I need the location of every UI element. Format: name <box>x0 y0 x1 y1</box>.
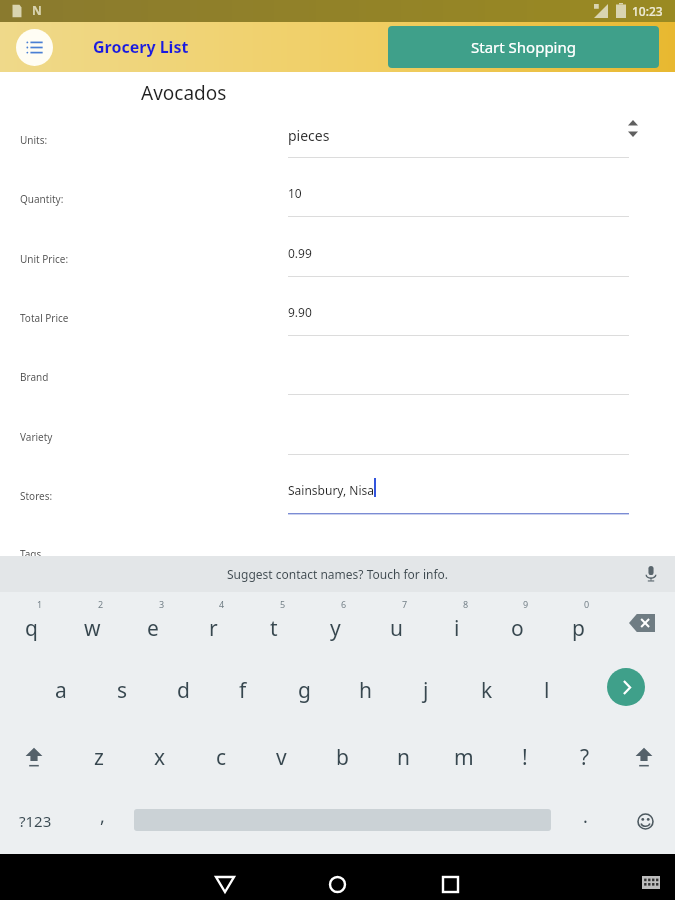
staticText: 6 <box>341 598 347 610</box>
staticText: 1 <box>37 598 43 610</box>
button[interactable]: Recent apps <box>428 862 472 900</box>
staticText: ? <box>580 743 590 772</box>
button[interactable]: t <box>244 594 304 652</box>
button[interactable]: k <box>457 661 517 719</box>
button[interactable]: pieces <box>288 121 629 159</box>
button[interactable]: x <box>130 728 190 786</box>
button[interactable]: w <box>62 594 122 652</box>
staticText: 0 <box>584 598 590 610</box>
staticText: e <box>147 614 159 643</box>
staticText: v <box>276 743 287 772</box>
staticText: Units: <box>20 133 48 147</box>
staticText: 10 <box>288 185 302 201</box>
staticText: 8 <box>463 598 469 610</box>
staticText: t <box>270 614 278 643</box>
staticText: Stores: <box>20 489 53 503</box>
button[interactable]: r <box>183 594 243 652</box>
button[interactable]: Shift right <box>618 728 670 786</box>
button[interactable]: o <box>487 594 547 652</box>
button[interactable]: m <box>434 728 494 786</box>
button[interactable]: ! <box>495 728 555 786</box>
staticText: pieces <box>288 126 330 145</box>
staticText: Start Shopping <box>471 37 576 57</box>
staticText: Total Price <box>20 311 69 325</box>
staticText: 5 <box>280 598 286 610</box>
staticText: Unit Price: <box>20 252 69 266</box>
staticText: q <box>25 614 38 643</box>
staticText: r <box>209 614 218 643</box>
staticText: 3 <box>159 598 165 610</box>
staticText: 9.90 <box>288 304 312 320</box>
staticText: 9 <box>523 598 529 610</box>
button[interactable]: s <box>92 661 152 719</box>
button[interactable]: Backspace <box>613 594 671 652</box>
staticText: c <box>216 743 227 772</box>
button[interactable] <box>288 358 629 396</box>
staticText: n <box>397 743 410 772</box>
button[interactable]: Shift <box>8 728 60 786</box>
button[interactable]: , <box>76 795 128 847</box>
button[interactable]: v <box>251 728 311 786</box>
button[interactable]: u <box>366 594 426 652</box>
button[interactable]: . <box>562 795 608 847</box>
button[interactable]: i <box>427 594 487 652</box>
button[interactable]: 0.99 <box>288 240 629 278</box>
button[interactable]: d <box>153 661 213 719</box>
staticText: j <box>423 676 429 705</box>
button[interactable] <box>288 418 629 456</box>
button[interactable]: l <box>517 661 577 719</box>
staticText: N <box>32 2 42 18</box>
button[interactable]: z <box>69 728 129 786</box>
button[interactable]: 9.90 <box>288 299 629 337</box>
staticText: 2 <box>98 598 104 610</box>
button[interactable]: Home <box>315 862 359 900</box>
staticText: l <box>544 676 550 705</box>
staticText: a <box>55 676 67 705</box>
staticText: Brand <box>20 370 49 384</box>
staticText: w <box>84 614 101 643</box>
button[interactable]: 10 <box>288 180 629 218</box>
staticText: d <box>177 676 190 705</box>
button[interactable]: f <box>213 661 273 719</box>
button[interactable]: Hide keyboard <box>203 862 247 900</box>
button[interactable]: Select units <box>628 120 638 137</box>
staticText: 4 <box>219 598 225 610</box>
button[interactable]: h <box>335 661 395 719</box>
button[interactable]: c <box>191 728 251 786</box>
button[interactable]: Open navigation list <box>16 29 53 66</box>
button[interactable]: Grocery List <box>93 36 189 58</box>
button[interactable]: e <box>123 594 183 652</box>
button[interactable]: Change keyboard <box>635 866 667 898</box>
staticText: 0.99 <box>288 245 312 261</box>
staticText: 7 <box>402 598 408 610</box>
staticText: g <box>298 676 311 705</box>
staticText: Tags <box>20 547 42 561</box>
button[interactable]: Emoji <box>620 795 670 847</box>
button[interactable]: n <box>373 728 433 786</box>
staticText: ?123 <box>19 811 52 831</box>
button[interactable]: ?123 <box>4 795 66 847</box>
button[interactable]: p <box>548 594 608 652</box>
staticText: Quantity: <box>20 192 64 206</box>
button[interactable]: Start Shopping <box>388 26 659 68</box>
button[interactable]: Sainsbury, Nisa <box>288 477 629 515</box>
staticText: m <box>454 743 474 772</box>
button[interactable]: q <box>1 594 61 652</box>
button[interactable]: ? <box>555 728 615 786</box>
staticText: f <box>239 676 247 705</box>
button[interactable]: a <box>31 661 91 719</box>
button[interactable]: j <box>396 661 456 719</box>
button[interactable]: Enter <box>607 668 645 706</box>
button[interactable]: g <box>274 661 334 719</box>
button[interactable]: Suggest contact names? Touch for info. <box>0 556 675 592</box>
button[interactable]: b <box>312 728 372 786</box>
staticText: y <box>330 614 341 643</box>
staticText: Avocados <box>141 80 227 106</box>
button[interactable]: Voice input <box>643 566 659 582</box>
staticText: h <box>359 676 372 705</box>
staticText: o <box>511 614 524 643</box>
staticText: , <box>100 804 105 829</box>
staticText: z <box>94 743 104 772</box>
button[interactable]: y <box>305 594 365 652</box>
